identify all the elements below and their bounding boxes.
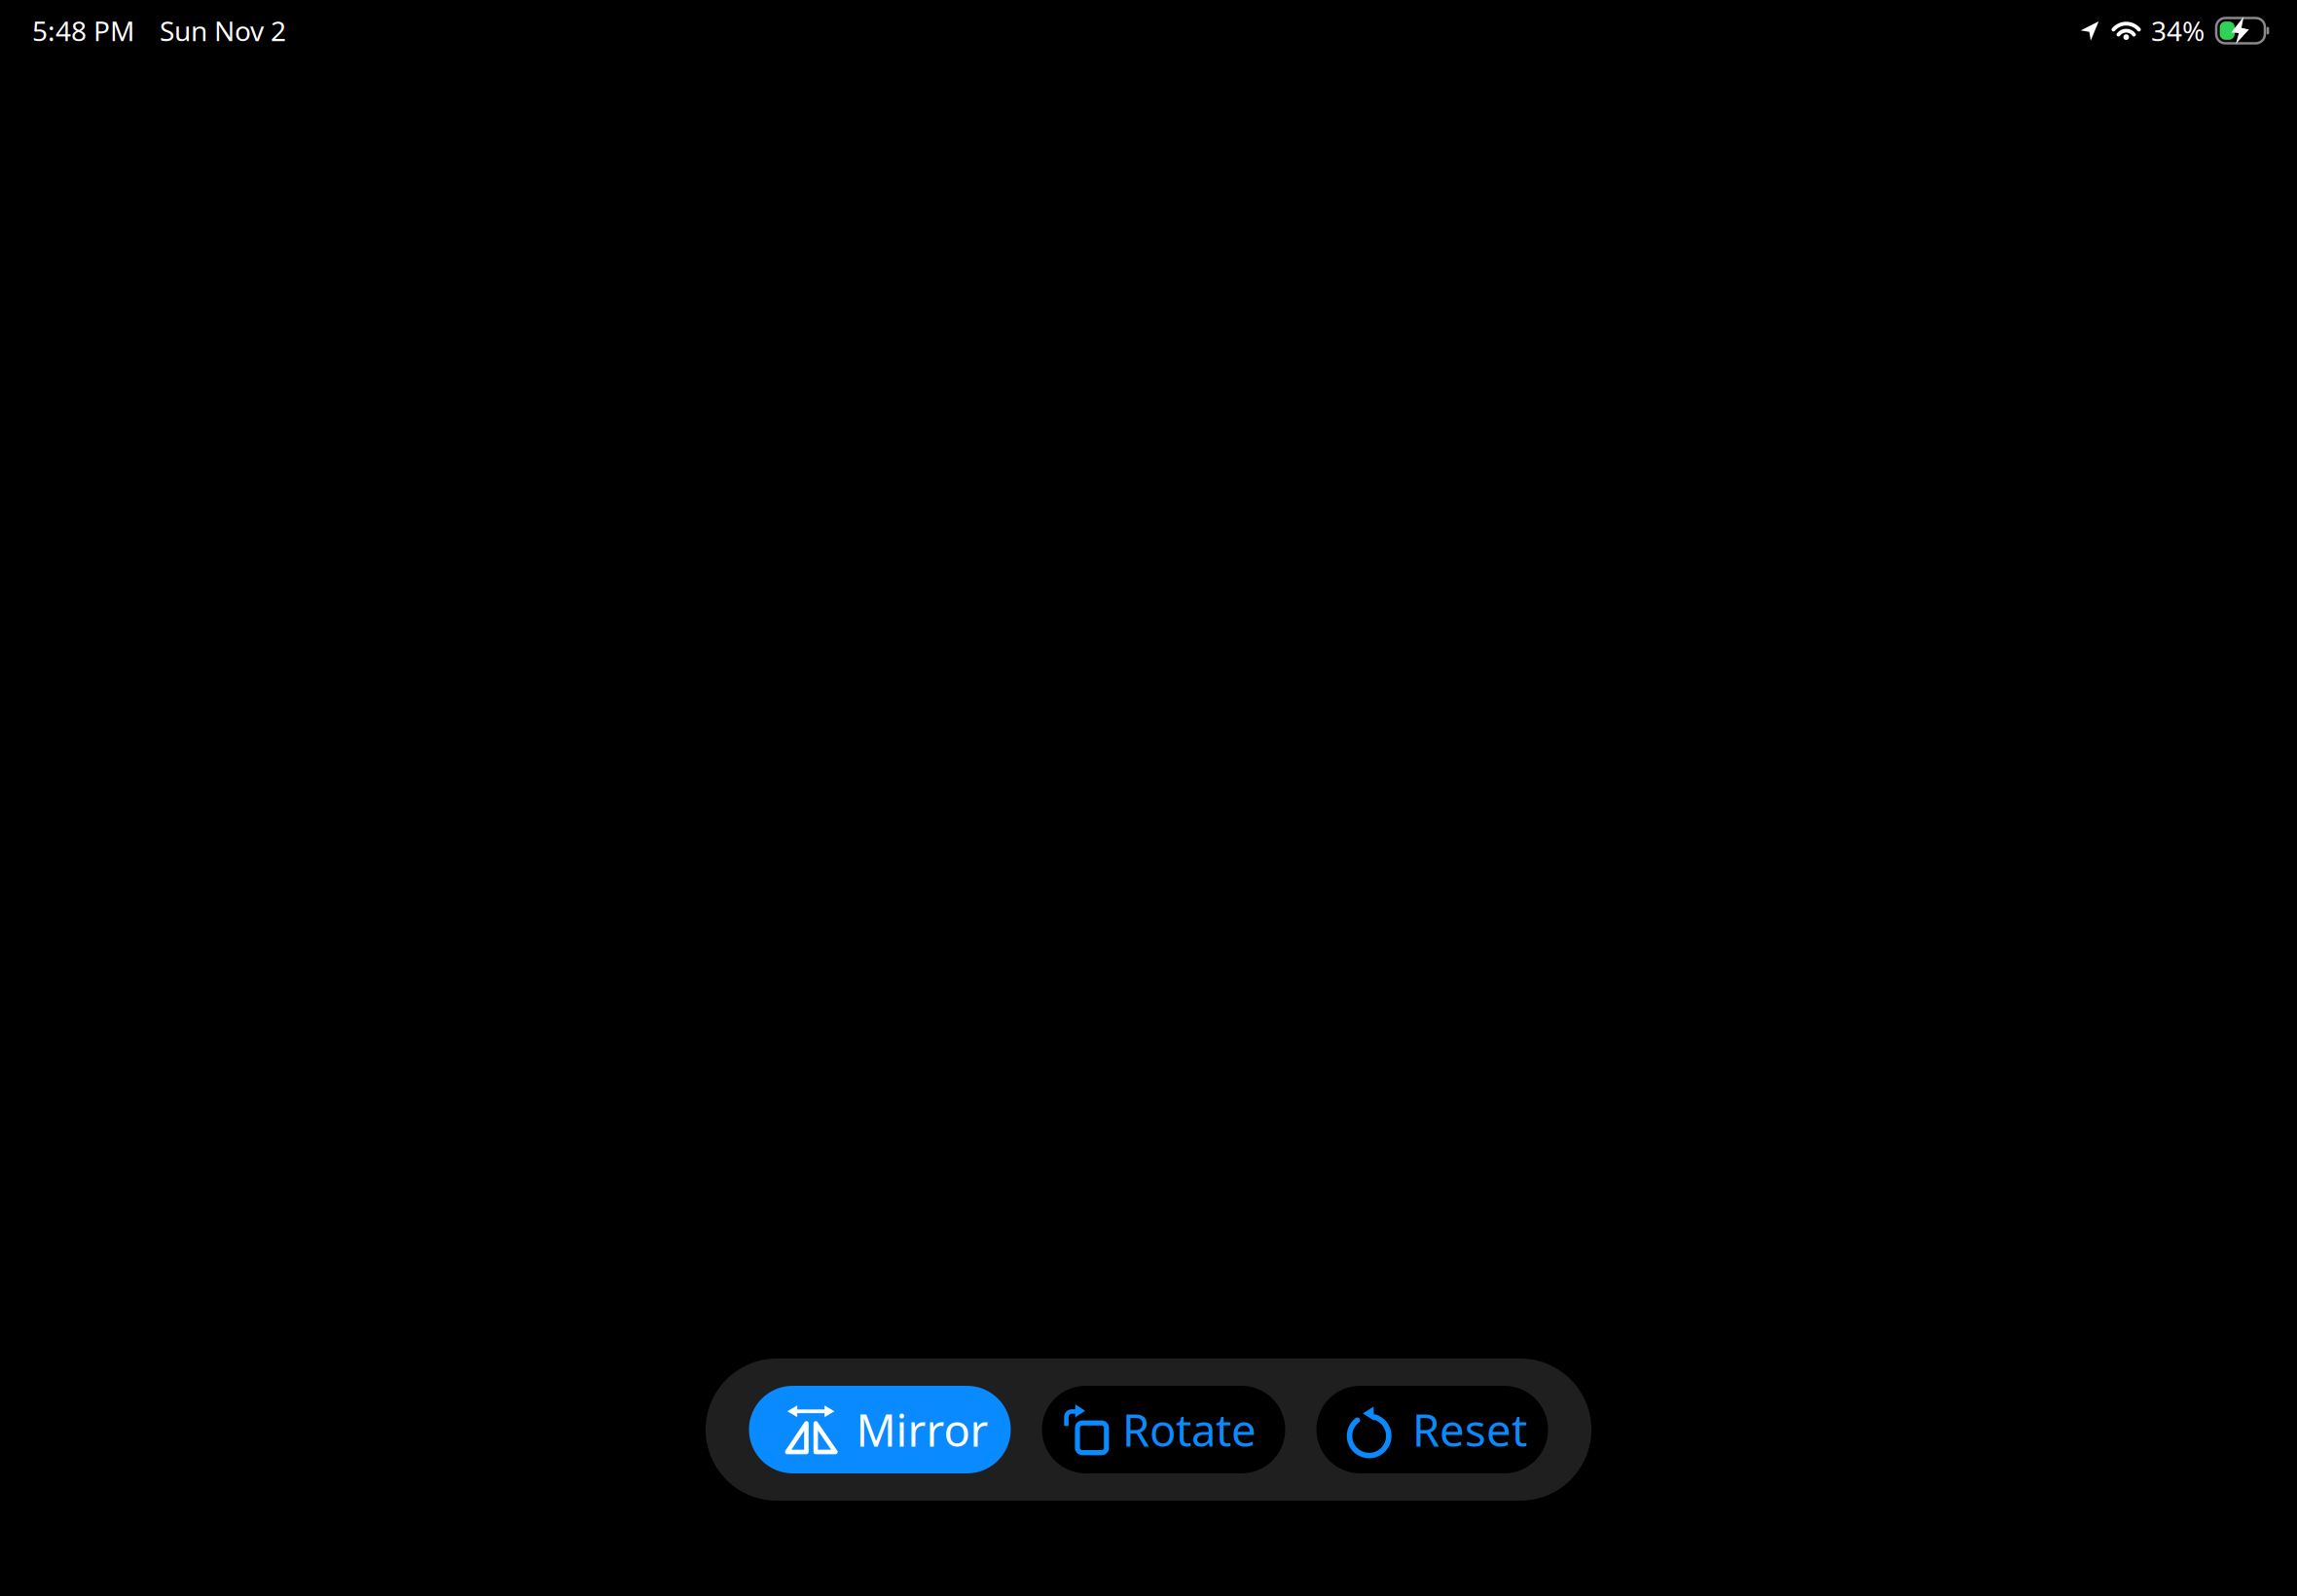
- staticText: 5:48 PM: [32, 13, 134, 49]
- staticText: 34%: [2151, 13, 2205, 49]
- button[interactable]: Mirror: [749, 1386, 1011, 1473]
- button[interactable]: Reset: [1316, 1386, 1548, 1473]
- staticText: Mirror: [856, 1400, 988, 1459]
- button[interactable]: Rotate: [1042, 1386, 1285, 1473]
- staticText: Sun Nov 2: [160, 13, 286, 49]
- staticText: Rotate: [1122, 1400, 1257, 1459]
- staticText: Reset: [1412, 1400, 1527, 1459]
